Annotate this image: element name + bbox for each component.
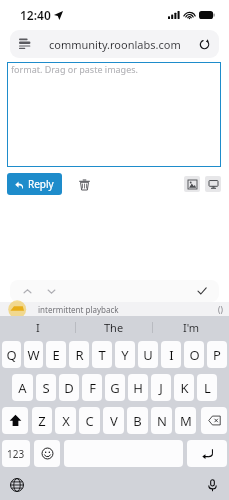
staticText: I bbox=[36, 320, 40, 335]
button[interactable]: I bbox=[0, 316, 75, 338]
button[interactable]: Page settings bbox=[18, 37, 32, 51]
staticText: T bbox=[98, 346, 106, 364]
button[interactable]: E bbox=[46, 341, 66, 368]
staticText: Z bbox=[38, 412, 46, 430]
button[interactable]: Dictate bbox=[203, 476, 221, 494]
button[interactable]: H bbox=[128, 374, 148, 401]
button[interactable]: Previous field bbox=[20, 284, 34, 298]
button[interactable]: W bbox=[24, 341, 43, 368]
button[interactable]: R bbox=[69, 341, 89, 368]
button[interactable]: T bbox=[92, 341, 112, 368]
button[interactable]: X bbox=[55, 407, 76, 434]
button[interactable]: I bbox=[161, 341, 181, 368]
staticText: community.roonlabs.com bbox=[49, 37, 181, 52]
button[interactable]: I'm bbox=[153, 316, 229, 338]
button[interactable]: P bbox=[207, 341, 227, 368]
button[interactable]: Reload bbox=[197, 37, 211, 51]
button[interactable]: S bbox=[36, 374, 56, 401]
button[interactable]: 123 bbox=[2, 440, 30, 467]
staticText: O bbox=[189, 346, 200, 364]
staticText: W bbox=[27, 346, 40, 364]
button[interactable]: Delete bbox=[76, 176, 92, 192]
staticText: Y bbox=[121, 346, 129, 364]
button[interactable]: Y bbox=[115, 341, 135, 368]
button[interactable]: Reply bbox=[7, 173, 62, 195]
button[interactable]: U bbox=[138, 341, 158, 368]
staticText: 12:40 bbox=[20, 7, 51, 23]
button[interactable]: Preview bbox=[205, 176, 221, 192]
button[interactable]: G bbox=[105, 374, 125, 401]
button[interactable]: Z bbox=[32, 407, 52, 434]
staticText: I'm bbox=[183, 320, 200, 335]
button[interactable]: J bbox=[151, 374, 171, 401]
staticText: M bbox=[180, 412, 192, 430]
staticText: R bbox=[75, 346, 84, 364]
staticText: B bbox=[133, 412, 142, 430]
button[interactable]: O bbox=[184, 341, 204, 368]
staticText: G bbox=[110, 379, 120, 397]
staticText: C bbox=[85, 412, 94, 430]
button[interactable]: C bbox=[79, 407, 100, 434]
staticText: J bbox=[159, 379, 163, 397]
staticText: 123 bbox=[7, 447, 25, 461]
staticText: E bbox=[52, 346, 60, 364]
button[interactable]: Next field bbox=[44, 284, 58, 298]
button[interactable]: K bbox=[174, 374, 194, 401]
staticText: K bbox=[180, 379, 189, 397]
staticText: V bbox=[110, 412, 118, 430]
staticText: U bbox=[143, 346, 153, 364]
button[interactable]: The bbox=[76, 316, 152, 338]
button[interactable]: Shift bbox=[2, 407, 28, 434]
staticText: L bbox=[204, 379, 211, 397]
staticText: () bbox=[218, 304, 223, 315]
button[interactable]: Done bbox=[195, 284, 209, 298]
button[interactable]: F bbox=[82, 374, 102, 401]
button[interactable]: Change keyboard bbox=[8, 476, 26, 494]
button[interactable]: D bbox=[59, 374, 79, 401]
button[interactable]: M bbox=[175, 407, 196, 434]
button[interactable]: V bbox=[103, 407, 124, 434]
staticText: P bbox=[213, 346, 221, 364]
staticText: S bbox=[42, 379, 50, 397]
staticText: A bbox=[18, 379, 27, 397]
button[interactable]: Insert image bbox=[184, 176, 200, 192]
button[interactable]: B bbox=[127, 407, 148, 434]
staticText: N bbox=[157, 412, 167, 430]
button[interactable]: Q bbox=[2, 341, 21, 368]
staticText: Q bbox=[6, 346, 17, 364]
staticText: D bbox=[64, 379, 74, 397]
staticText: The bbox=[104, 320, 124, 335]
staticText: X bbox=[62, 412, 70, 430]
staticText: I bbox=[169, 346, 174, 364]
button[interactable]: Emoji bbox=[34, 440, 60, 467]
staticText: intermittent playback bbox=[38, 304, 119, 315]
button[interactable]: Backspace bbox=[201, 407, 227, 434]
button[interactable]: L bbox=[197, 374, 217, 401]
button[interactable]: A bbox=[12, 374, 33, 401]
button[interactable]: N bbox=[151, 407, 172, 434]
button[interactable]: Return bbox=[187, 440, 227, 467]
staticText: format. Drag or paste images. bbox=[11, 63, 138, 75]
staticText: H bbox=[133, 379, 143, 397]
staticText: Reply bbox=[28, 177, 54, 191]
staticText: F bbox=[89, 379, 96, 397]
